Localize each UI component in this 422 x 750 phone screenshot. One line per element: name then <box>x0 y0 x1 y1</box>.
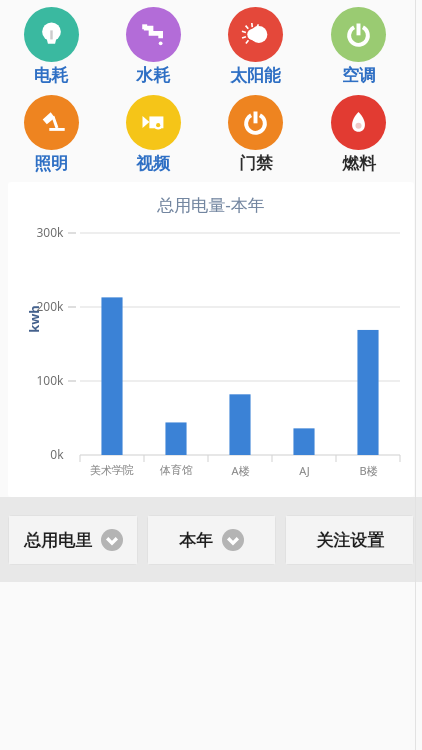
staticText: 视频 <box>136 153 170 174</box>
staticText: 门禁 <box>239 153 273 174</box>
staticText: 100k <box>36 372 64 388</box>
button[interactable]: Video <box>102 94 204 175</box>
button[interactable]: Air conditioning <box>307 6 410 87</box>
button[interactable]: Solar <box>204 6 307 87</box>
staticText: 200k <box>36 298 64 314</box>
button[interactable]: Fuel <box>307 94 410 175</box>
staticText: 0k <box>50 446 64 462</box>
staticText: 空调 <box>342 65 376 86</box>
staticText: B楼 <box>359 463 378 478</box>
staticText: kwh <box>25 305 43 333</box>
staticText: 美术学院 <box>90 463 134 477</box>
staticText: 总用电里 <box>24 530 92 551</box>
button[interactable]: 关注设置 <box>285 515 414 565</box>
button[interactable]: Lighting <box>0 94 102 175</box>
staticText: 电耗 <box>34 65 68 86</box>
staticText: AJ <box>299 463 310 478</box>
button[interactable]: Water <box>102 6 204 87</box>
staticText: A楼 <box>231 463 250 478</box>
button[interactable]: 本年 <box>147 515 276 565</box>
staticText: 水耗 <box>136 65 170 86</box>
staticText: 本年 <box>179 530 213 551</box>
staticText: 体育馆 <box>160 463 193 477</box>
staticText: 燃料 <box>342 153 376 174</box>
staticText: 关注设置 <box>316 530 384 551</box>
button[interactable]: 总用电里 <box>8 515 138 565</box>
staticText: 300k <box>36 224 64 240</box>
button[interactable]: Electricity <box>0 6 102 87</box>
staticText: 总用电量-本年 <box>157 193 265 216</box>
staticText: 太阳能 <box>230 65 281 86</box>
staticText: 照明 <box>34 153 68 174</box>
button[interactable]: Access control <box>204 94 307 175</box>
